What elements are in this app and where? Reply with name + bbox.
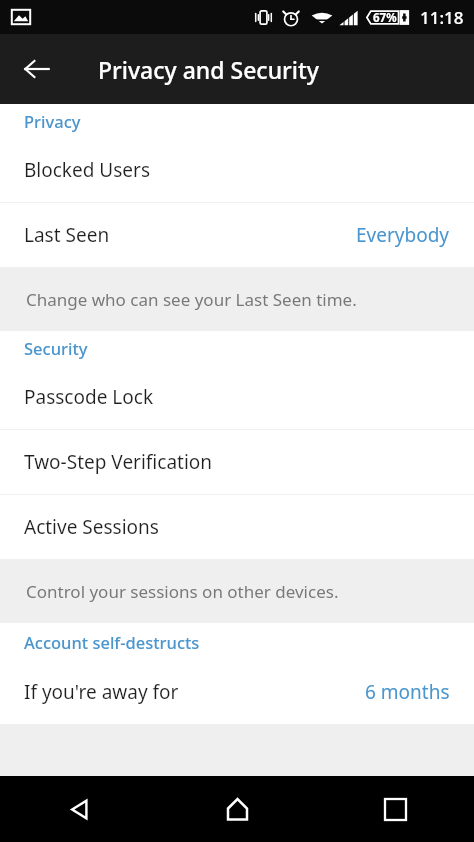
- staticText: 6 months: [365, 679, 450, 705]
- staticText: 67%: [373, 10, 397, 26]
- staticText: If you're away for: [24, 679, 179, 705]
- button[interactable]: If you're away for: [0, 660, 474, 724]
- button[interactable]: Two-Step Verification: [0, 430, 474, 494]
- staticText: Security: [24, 337, 88, 359]
- staticText: Account self-destructs: [24, 631, 200, 653]
- button[interactable]: Home: [158, 776, 316, 842]
- button[interactable]: Last Seen: [0, 203, 474, 267]
- staticText: Privacy and Security: [98, 54, 319, 85]
- button[interactable]: Passcode Lock: [0, 365, 474, 429]
- staticText: Privacy: [24, 110, 81, 132]
- staticText: Two-Step Verification: [24, 449, 213, 475]
- staticText: Everybody: [356, 222, 450, 248]
- staticText: Last Seen: [24, 222, 110, 248]
- button[interactable]: Back: [10, 42, 64, 96]
- staticText: Blocked Users: [24, 157, 151, 183]
- staticText: 11:18: [420, 6, 464, 29]
- staticText: Active Sessions: [24, 514, 159, 540]
- button[interactable]: Back: [0, 776, 158, 842]
- staticText: Control your sessions on other devices.: [26, 580, 339, 603]
- button[interactable]: Active Sessions: [0, 495, 474, 559]
- staticText: Passcode Lock: [24, 384, 154, 410]
- button[interactable]: Blocked Users: [0, 138, 474, 202]
- staticText: Change who can see your Last Seen time.: [26, 288, 357, 311]
- button[interactable]: Recent apps: [316, 776, 474, 842]
